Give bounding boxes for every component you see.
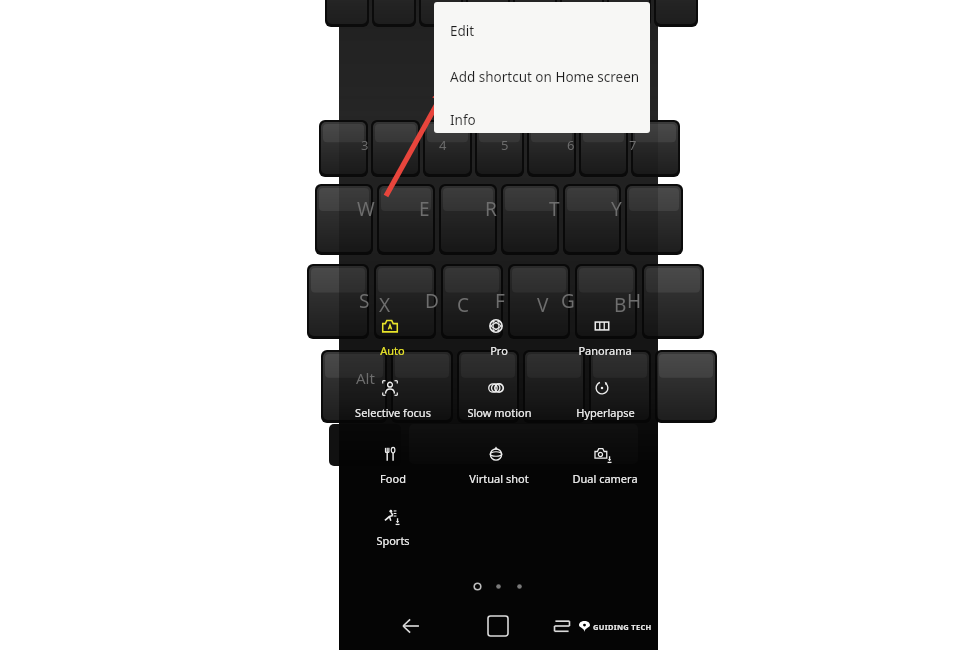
- staticText: Info: [450, 111, 476, 129]
- button[interactable]: Back: [387, 602, 435, 650]
- staticText: Auto: [380, 343, 405, 358]
- staticText: E: [419, 196, 430, 222]
- staticText: D: [425, 288, 439, 314]
- staticText: Selective focus: [355, 405, 431, 420]
- staticText: T: [549, 196, 560, 222]
- staticText: B: [614, 292, 627, 318]
- button[interactable]: Selective focus: [339, 374, 446, 430]
- button[interactable]: Auto: [339, 312, 446, 368]
- staticText: Hyperlapse: [576, 405, 635, 420]
- staticText: 6: [567, 136, 575, 154]
- staticText: Slow motion: [467, 405, 532, 420]
- staticText: V: [537, 292, 549, 318]
- button[interactable]: Sports: [339, 502, 446, 558]
- staticText: S: [359, 288, 370, 314]
- staticText: Panorama: [578, 343, 632, 358]
- staticText: F: [495, 288, 505, 314]
- staticText: Sports: [376, 533, 410, 548]
- button[interactable]: Panorama: [552, 312, 658, 368]
- staticText: Dual camera: [572, 471, 638, 486]
- staticText: C: [457, 292, 470, 318]
- staticText: H: [627, 288, 642, 314]
- staticText: 4: [439, 136, 447, 154]
- button[interactable]: Home: [474, 602, 522, 650]
- button[interactable]: Pro: [446, 312, 552, 368]
- staticText: X: [379, 292, 391, 318]
- button[interactable]: Add shortcut on Home screen: [434, 62, 650, 92]
- staticText: 3: [361, 136, 369, 154]
- staticText: G: [561, 288, 575, 314]
- button[interactable]: Dual camera: [552, 440, 658, 496]
- button[interactable]: Info: [434, 105, 650, 133]
- staticText: Edit: [450, 22, 475, 40]
- staticText: GUIDING TECH: [593, 622, 652, 632]
- button[interactable]: Recents: [538, 602, 586, 650]
- staticText: Virtual shot: [469, 471, 529, 486]
- staticText: Alt: [356, 368, 375, 388]
- button[interactable]: Slow motion: [446, 374, 552, 430]
- button[interactable]: Virtual shot: [446, 440, 552, 496]
- staticText: Pro: [490, 343, 508, 358]
- staticText: Food: [380, 471, 406, 486]
- staticText: R: [485, 196, 497, 222]
- staticText: Add shortcut on Home screen: [450, 68, 640, 86]
- button[interactable]: Food: [339, 440, 446, 496]
- button[interactable]: Edit: [434, 16, 650, 46]
- button[interactable]: Hyperlapse: [552, 374, 658, 430]
- staticText: Y: [611, 196, 622, 222]
- staticText: 5: [501, 136, 509, 154]
- staticText: W: [357, 196, 375, 222]
- staticText: 7: [629, 136, 637, 154]
